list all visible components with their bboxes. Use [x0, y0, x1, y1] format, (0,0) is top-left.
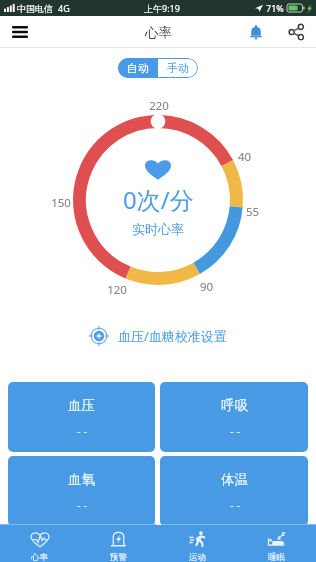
button[interactable]: 血压/血糖校准设置: [89, 326, 227, 346]
staticText: 血压: [68, 397, 95, 414]
button[interactable]: 手动: [158, 58, 198, 78]
button[interactable]: 自动: [118, 58, 158, 78]
button[interactable]: 心率: [0, 525, 79, 562]
staticText: 自动: [127, 61, 149, 75]
staticText: 血压/血糖校准设置: [118, 327, 227, 345]
staticText: 55: [240, 204, 265, 220]
staticText: 心率: [31, 552, 48, 562]
staticText: - -: [230, 497, 240, 512]
button[interactable]: 血压: [8, 382, 155, 452]
button[interactable]: Share: [277, 16, 316, 48]
staticText: 40: [232, 149, 257, 165]
staticText: 4G: [58, 2, 70, 14]
staticText: 体温: [221, 471, 248, 488]
staticText: 运动: [189, 552, 206, 562]
staticText: - -: [77, 423, 87, 438]
staticText: 90: [194, 279, 219, 295]
staticText: 呼吸: [221, 397, 248, 414]
staticText: 150: [45, 195, 77, 211]
staticText: 手动: [167, 61, 189, 75]
staticText: - -: [230, 423, 240, 438]
staticText: 实时心率: [132, 221, 184, 237]
staticText: 血氧: [68, 471, 95, 488]
staticText: 预警: [110, 552, 127, 562]
button[interactable]: Notifications: [235, 16, 277, 48]
staticText: 71%: [266, 2, 284, 14]
staticText: 0次/分: [123, 183, 194, 216]
button[interactable]: 预警: [79, 525, 158, 562]
button[interactable]: 呼吸: [160, 382, 308, 452]
staticText: - -: [77, 497, 87, 512]
button[interactable]: 血氧: [8, 456, 155, 526]
staticText: 中国电信: [17, 3, 53, 14]
button[interactable]: 体温: [160, 456, 308, 526]
staticText: 心率: [145, 24, 172, 41]
button[interactable]: 运动: [158, 525, 237, 562]
staticText: 120: [101, 282, 133, 298]
staticText: 上午9:19: [144, 2, 180, 14]
button[interactable]: Menu: [0, 16, 40, 48]
staticText: 睡眠: [268, 552, 285, 562]
staticText: 220: [143, 98, 175, 114]
button[interactable]: 睡眠: [237, 525, 316, 562]
